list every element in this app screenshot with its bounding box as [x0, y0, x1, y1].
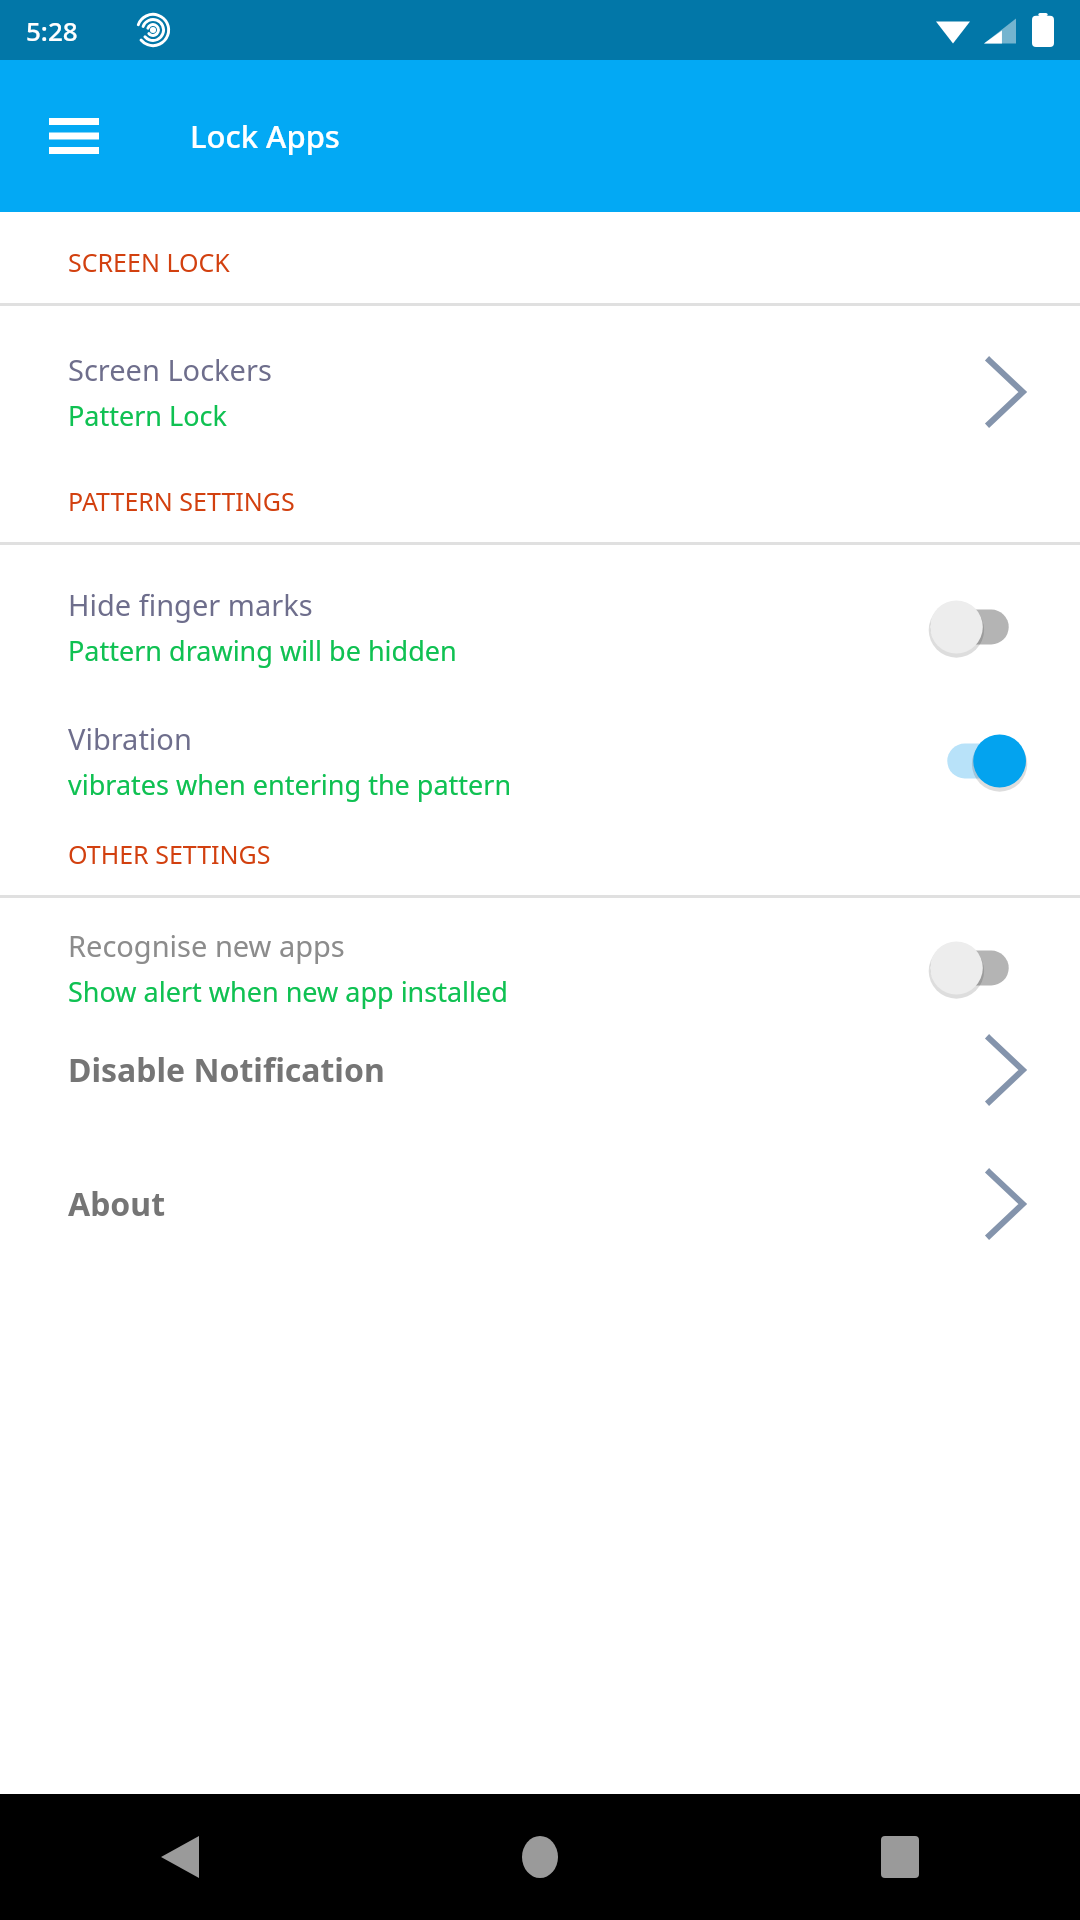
button[interactable]: Back: [0, 1794, 360, 1920]
staticText: vibrates when entering the pattern: [68, 766, 512, 803]
button[interactable]: Disable Notification: [0, 1018, 1080, 1140]
staticText: OTHER SETTINGS: [68, 837, 271, 871]
staticText: Pattern drawing will be hidden: [68, 632, 457, 669]
button[interactable]: Recognise new apps: [0, 898, 1080, 1018]
staticText: Lock Apps: [190, 115, 340, 157]
button[interactable]: Toggle on: [930, 731, 1026, 791]
staticText: Screen Lockers: [68, 350, 272, 389]
button[interactable]: Screen Lockers: [0, 306, 1080, 484]
staticText: 5:28: [26, 13, 78, 48]
staticText: Recognise new apps: [68, 926, 345, 965]
staticText: About: [68, 1182, 986, 1226]
staticText: Show alert when new app installed: [68, 973, 508, 1010]
staticText: Hide finger marks: [68, 585, 313, 624]
staticText: Pattern Lock: [68, 397, 227, 434]
staticText: SCREEN LOCK: [68, 245, 230, 279]
button[interactable]: Open navigation menu: [28, 90, 120, 182]
button[interactable]: Toggle off: [930, 597, 1026, 657]
button[interactable]: About: [0, 1140, 1080, 1274]
staticText: Disable Notification: [68, 1048, 986, 1092]
staticText: Vibration: [68, 719, 192, 758]
button[interactable]: Recent apps: [720, 1794, 1080, 1920]
staticText: PATTERN SETTINGS: [68, 484, 295, 518]
button[interactable]: Hide finger marks: [0, 545, 1080, 693]
button[interactable]: Toggle off: [930, 938, 1026, 998]
button[interactable]: Vibration: [0, 693, 1080, 837]
button[interactable]: Home: [360, 1794, 720, 1920]
